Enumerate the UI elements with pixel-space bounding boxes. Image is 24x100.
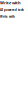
- staticText: AI powered tech: [0, 8, 24, 12]
- staticText: Write with: [0, 15, 15, 18]
- staticText: Write with: [0, 0, 21, 5]
